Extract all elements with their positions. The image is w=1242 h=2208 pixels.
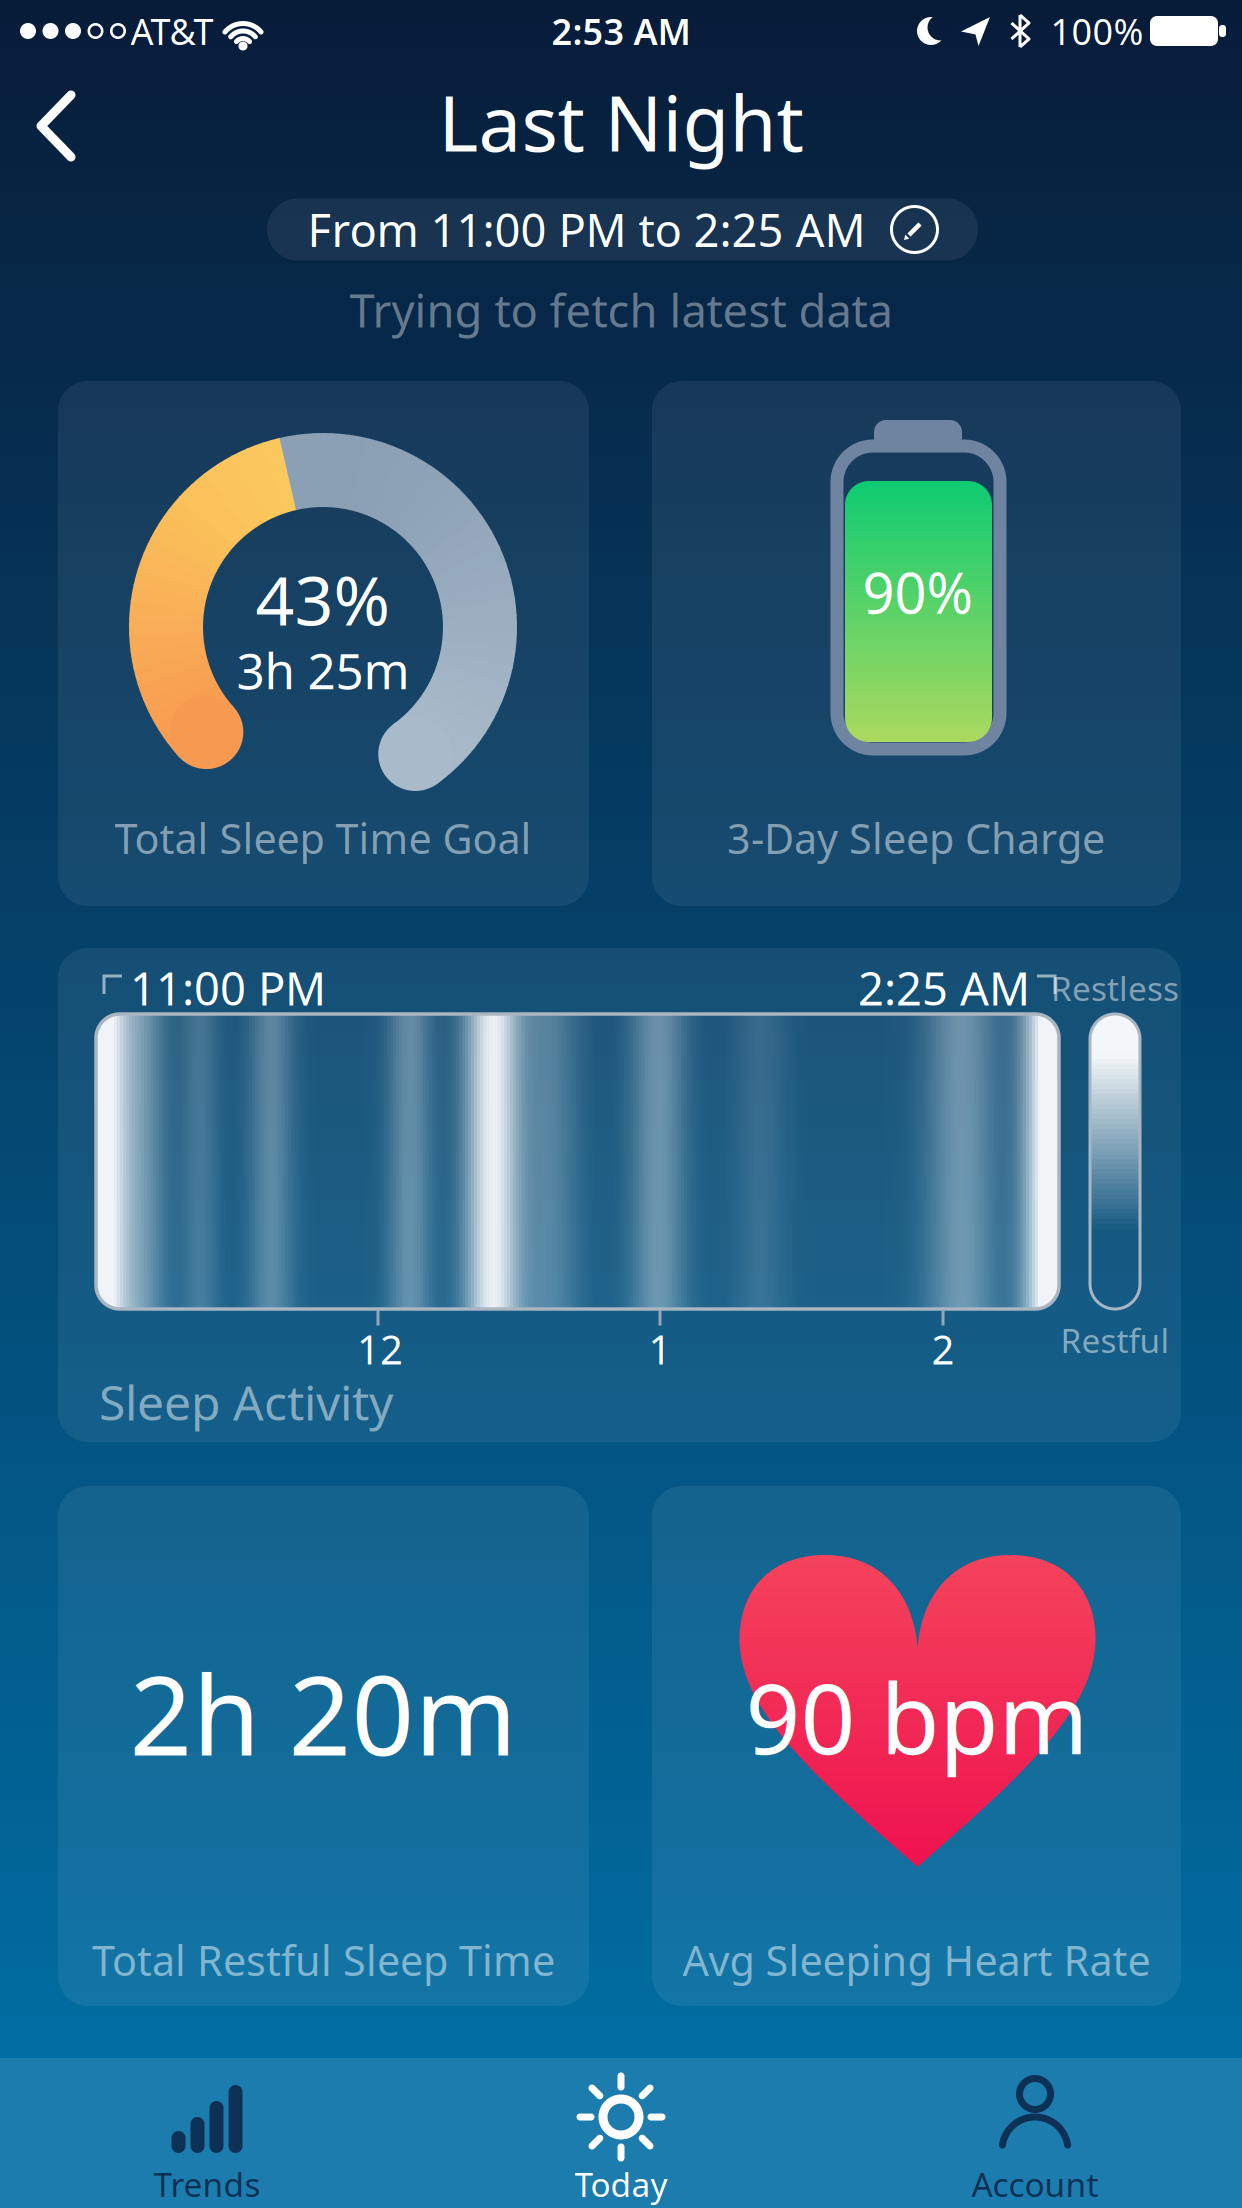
staticText: Sleep Activity <box>99 1370 393 1434</box>
button[interactable]: Account <box>875 2067 1195 2208</box>
button[interactable]: Trends <box>47 2067 367 2208</box>
button[interactable]: Back <box>35 90 77 162</box>
staticText: 2h 20m <box>129 1640 516 1786</box>
staticText: Avg Sleeping Heart Rate <box>682 1933 1150 1987</box>
staticText: 2 <box>931 1322 954 1375</box>
button[interactable]: From 11:00 PM to 2:25 AM <box>267 198 978 260</box>
staticText: AT&T <box>130 7 213 55</box>
staticText: Today <box>574 2162 667 2206</box>
staticText: Total Sleep Time Goal <box>114 811 531 865</box>
staticText: Trying to fetch latest data <box>349 280 892 340</box>
staticText: Restless <box>1051 966 1179 1010</box>
staticText: Last Night <box>438 71 803 172</box>
staticText: 90% <box>862 555 973 629</box>
staticText: 100% <box>1050 7 1143 55</box>
staticText: 3h 25m <box>236 637 409 703</box>
button[interactable]: Today <box>461 2067 781 2208</box>
staticText: 12 <box>357 1322 403 1375</box>
staticText: Restful <box>1060 1318 1169 1362</box>
staticText: From 11:00 PM to 2:25 AM <box>307 199 865 260</box>
staticText: 90 bpm <box>745 1653 1088 1781</box>
staticText: Total Restful Sleep Time <box>92 1933 555 1987</box>
staticText: 11:00 PM <box>130 958 326 1018</box>
staticText: 1 <box>648 1322 671 1375</box>
staticText: 2:25 AM <box>858 958 1030 1018</box>
staticText: 3-Day Sleep Charge <box>727 811 1105 865</box>
staticText: 2:53 AM <box>551 7 690 55</box>
staticText: Account <box>971 2162 1098 2206</box>
staticText: 43% <box>255 554 390 644</box>
staticText: Trends <box>153 2162 260 2206</box>
